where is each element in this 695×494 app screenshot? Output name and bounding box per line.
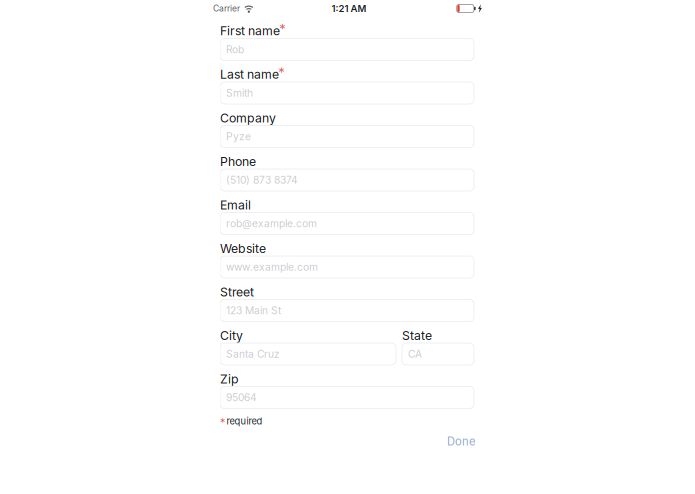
button[interactable]: Last name [220,68,474,104]
staticText: Company [220,111,276,125]
staticText: Pyze [226,130,251,143]
button[interactable]: Website [220,242,474,278]
button[interactable]: City [220,329,396,365]
button[interactable]: Done [220,435,476,447]
staticText: First name [220,23,280,38]
staticText: 95064 [226,391,257,404]
staticText: CA [408,348,422,360]
staticText: Santa Cruz [226,348,280,360]
button[interactable]: Street [220,285,474,321]
staticText: 123 Main St [226,304,281,317]
button[interactable]: State [402,329,474,365]
staticText: Zip [220,372,239,386]
staticText: (510) 873 8374 [226,174,298,186]
button[interactable]: Email [220,198,474,234]
button[interactable]: First name [220,24,474,60]
staticText: rob@example.com [226,217,317,230]
staticText: Email [220,198,251,212]
staticText: www.example.com [226,261,318,273]
staticText: required [226,415,262,427]
staticText: * [220,416,225,429]
staticText: * [279,22,285,37]
staticText: State [402,328,432,343]
button[interactable]: Company [220,111,474,147]
staticText: City [220,328,243,343]
staticText: Rob [226,43,244,56]
staticText: * [278,65,284,81]
staticText: Smith [226,87,253,99]
staticText: Carrier [213,3,240,14]
staticText: Done [447,435,476,448]
staticText: Street [220,285,254,299]
staticText: Phone [220,154,256,169]
staticText: Website [220,241,266,256]
staticText: 1:21 AM [331,3,366,14]
button[interactable]: Zip [220,372,474,408]
button[interactable]: Phone [220,155,474,191]
staticText: Last name [220,67,279,82]
